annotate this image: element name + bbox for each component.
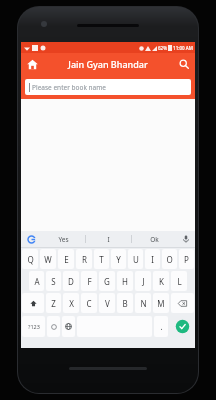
button[interactable]: Yes [41,231,85,247]
staticText: I [107,235,110,244]
staticText: Please enter book name [32,83,106,92]
button[interactable]: J [135,271,151,291]
staticText: T [99,254,104,265]
button[interactable]: N [135,293,151,313]
staticText: ?123 [28,323,40,330]
button[interactable]: U [128,249,143,269]
staticText: G [104,276,110,287]
button[interactable]: Home [22,54,42,74]
staticText: Ok [150,235,159,244]
button[interactable]: I [86,231,131,247]
staticText: K [159,276,164,287]
button[interactable]: W [40,249,56,269]
button[interactable]: S [46,271,61,291]
button[interactable]: Backspace [171,293,194,313]
staticText: . [160,321,163,332]
button[interactable]: H [117,271,133,291]
staticText: Y [116,254,121,265]
staticText: X [69,298,74,309]
staticText: C [86,298,92,309]
staticText: R [82,254,87,265]
button[interactable]: C [81,293,97,313]
button[interactable]: G [99,271,115,291]
button[interactable]: . [154,316,168,337]
staticText: L [177,276,182,287]
button[interactable]: Z [46,293,61,313]
staticText: V [105,298,110,309]
button[interactable]: Google [21,231,41,247]
staticText: Jain Gyan Bhandar [68,58,148,70]
button[interactable]: Enter [170,316,194,337]
button[interactable]: P [179,249,194,269]
button[interactable]: Q [22,249,38,269]
button[interactable]: M [153,293,169,313]
button[interactable]: Please enter book name [25,79,191,95]
staticText: Yes [58,235,69,244]
staticText: P [184,254,189,265]
button[interactable]: E [58,249,74,269]
button[interactable]: A [29,271,44,291]
staticText: E [64,254,69,265]
staticText: M [157,298,165,309]
button[interactable]: K [153,271,169,291]
button[interactable]: ?123 [22,316,45,337]
staticText: F [87,276,92,287]
button[interactable]: Voice input [177,231,195,247]
button[interactable]: L [171,271,187,291]
button[interactable]: R [76,249,92,269]
button[interactable]: Shift [22,293,44,313]
staticText: H [122,276,128,287]
button[interactable]: Change language [62,316,75,337]
button[interactable]: X [63,293,79,313]
staticText: Q [27,254,34,265]
staticText: Z [51,298,56,309]
staticText: 62% [158,45,167,51]
staticText: B [122,298,128,309]
button[interactable]: Emoji [47,316,60,337]
button[interactable]: Y [111,249,126,269]
button[interactable]: D [63,271,79,291]
button[interactable]: F [81,271,97,291]
staticText: 11:00 AM [173,45,193,51]
staticText: S [51,276,56,287]
staticText: D [68,276,74,287]
staticText: O [166,254,173,265]
staticText: W [44,254,52,265]
button[interactable]: B [117,293,133,313]
button[interactable]: O [162,249,177,269]
staticText: N [140,298,147,309]
button[interactable]: I [145,249,160,269]
staticText: I [151,254,154,265]
staticText: U [133,254,139,265]
button[interactable]: V [99,293,115,313]
staticText: J [142,276,145,287]
button[interactable]: Search [174,54,194,74]
button[interactable]: T [94,249,109,269]
button[interactable]: Ok [132,231,177,247]
staticText: A [34,276,40,287]
